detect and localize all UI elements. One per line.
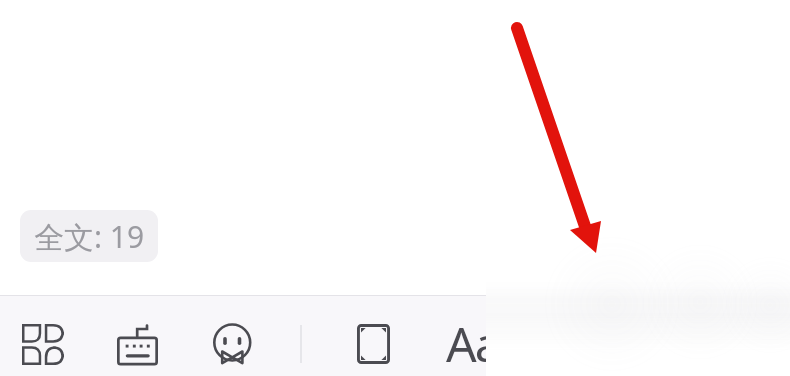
staticText: Aa — [446, 311, 486, 369]
button[interactable]: Catalog — [12, 315, 74, 373]
button[interactable]: Read aloud — [201, 315, 263, 373]
button[interactable]: 全文: 19 — [20, 210, 158, 262]
staticText: 全文: 19 — [34, 216, 145, 257]
button[interactable]: Aa — [440, 310, 486, 368]
button[interactable]: Page mode — [342, 315, 404, 373]
button[interactable]: AI assistant — [106, 316, 168, 374]
